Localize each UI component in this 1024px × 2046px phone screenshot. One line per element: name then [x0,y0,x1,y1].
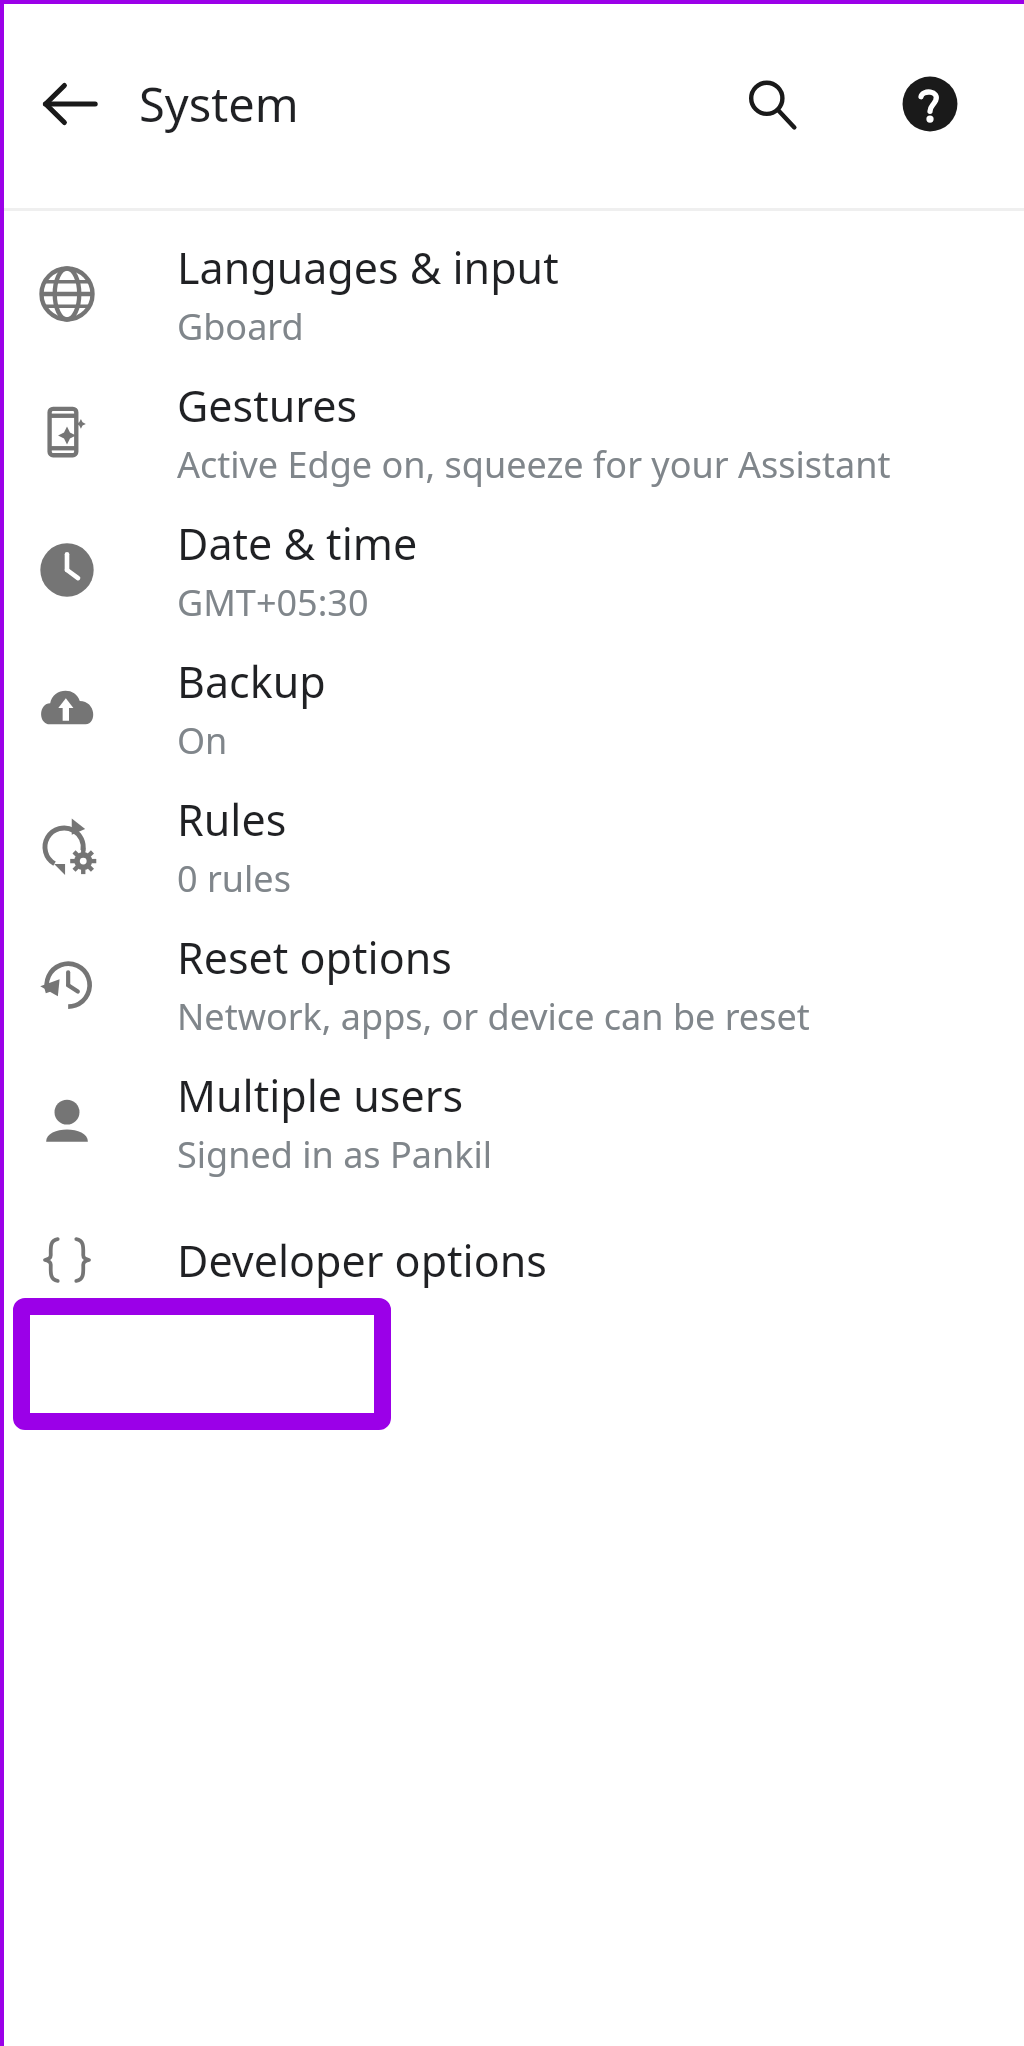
staticText: 0 rules [177,854,291,903]
staticText: Developer options [177,1231,547,1290]
staticText: On [177,716,228,765]
staticText: Signed in as Pankil [177,1130,492,1179]
button[interactable]: Gestures [0,363,1024,501]
button[interactable]: Search [722,54,822,154]
staticText: Date & time [177,514,418,573]
staticText: GMT+05:30 [177,578,369,627]
staticText: Languages & input [177,238,559,297]
staticText: Gboard [177,302,304,351]
button[interactable]: Developer options [0,1191,1024,1329]
staticText: Active Edge on, squeeze for your Assista… [177,440,891,489]
button[interactable]: Rules [0,777,1024,915]
staticText: Backup [177,652,326,711]
staticText: System [139,72,299,136]
staticText: Multiple users [177,1066,464,1125]
staticText: Reset options [177,928,452,987]
button[interactable]: Languages & input [0,225,1024,363]
button[interactable]: Back [20,54,120,154]
button[interactable]: Backup [0,639,1024,777]
staticText: Network, apps, or device can be reset [177,992,810,1041]
button[interactable]: Help [880,54,980,154]
button[interactable]: Multiple users [0,1053,1024,1191]
staticText: Rules [177,790,287,849]
staticText: Gestures [177,376,357,435]
button[interactable]: Reset options [0,915,1024,1053]
button[interactable]: Date & time [0,501,1024,639]
